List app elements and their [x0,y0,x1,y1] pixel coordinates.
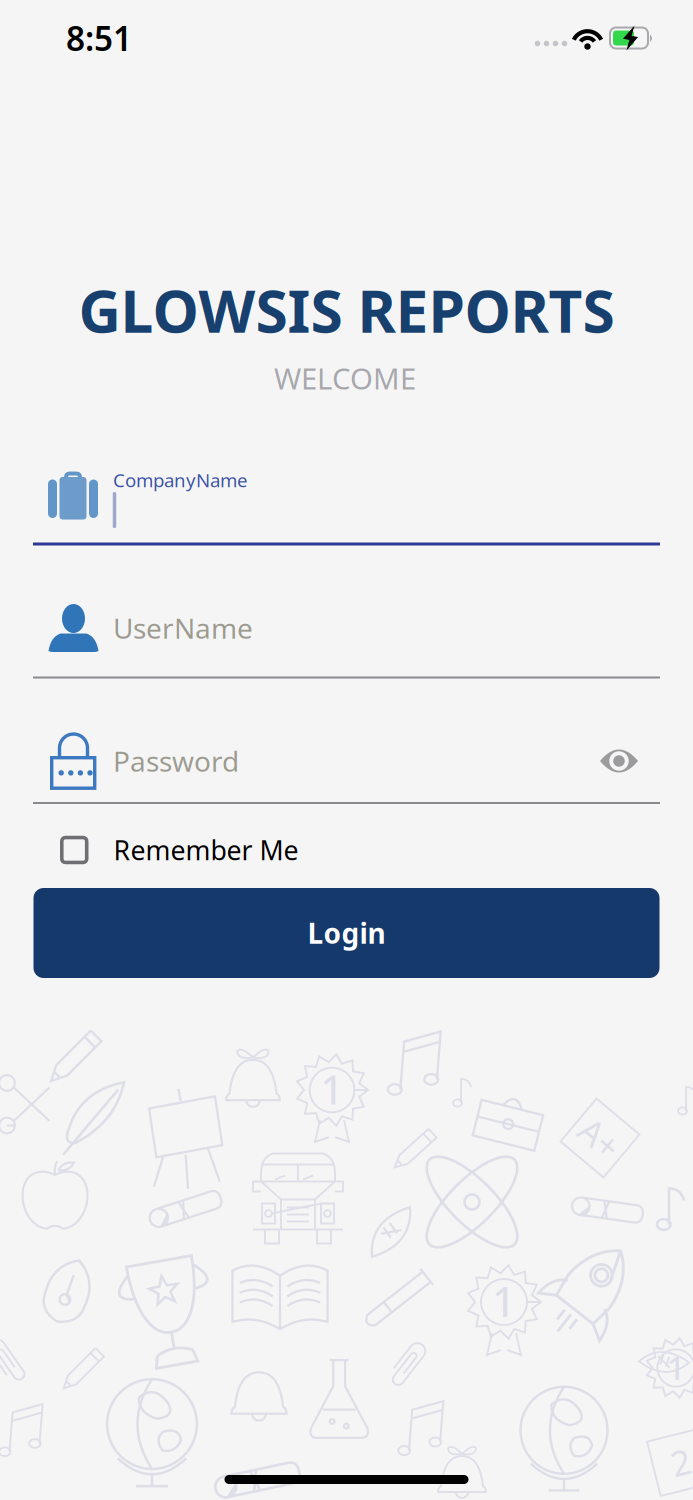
textField[interactable]: CompanyName [113,491,653,529]
button[interactable]: Remember Me [33,828,659,872]
staticText: Login [307,914,385,952]
staticText: UserName [113,609,253,647]
staticText: CompanyName [113,468,248,492]
button[interactable]: Login [33,888,659,978]
staticText: Password [113,742,239,780]
staticText: 8:51 [66,16,132,60]
staticText: WELCOME [274,358,416,397]
staticText: 1 [320,1062,343,1115]
button[interactable]: Show password [590,737,648,784]
staticText: Remember Me [113,832,298,868]
staticText: A+ [579,1115,621,1161]
secureTextField[interactable]: Password [113,742,413,780]
textField[interactable]: UserName [113,609,413,647]
staticText: 1 [492,1274,516,1328]
staticText: 1 [666,1345,685,1389]
staticText: GLOWSIS REPORTS [78,271,614,349]
staticText: 2 [671,1439,691,1485]
